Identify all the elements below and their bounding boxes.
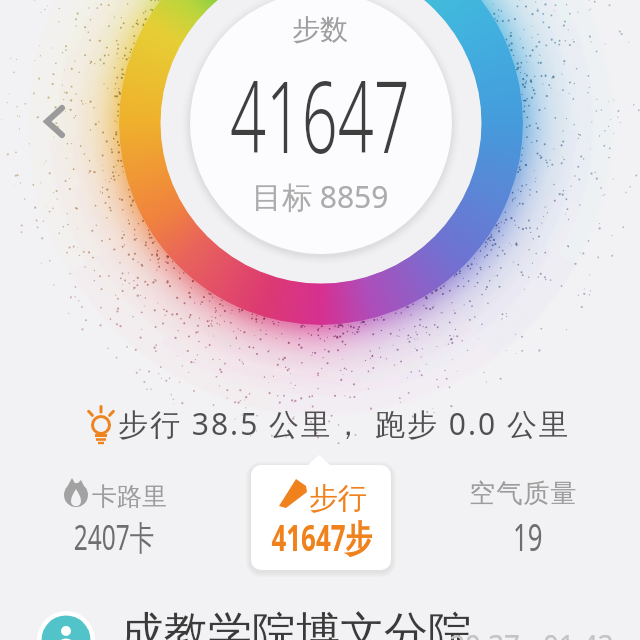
staticText: 19 — [513, 510, 543, 562]
staticText: 成教学院博文分院 — [120, 606, 472, 640]
staticText: 20:37 - 01:43 — [449, 625, 614, 640]
staticText: 目标 8859 — [252, 176, 389, 217]
staticText: 2407卡 — [74, 514, 154, 560]
staticText: 空气质量 — [469, 477, 577, 510]
button[interactable] — [34, 96, 78, 140]
staticText: 41647步 — [271, 513, 372, 562]
staticText: 41647 — [230, 46, 410, 182]
button[interactable] — [0, 600, 640, 640]
staticText: 卡路里 — [92, 481, 167, 512]
button[interactable] — [251, 455, 391, 570]
staticText: 步行 — [309, 480, 367, 517]
staticText: 步行 38.5 公里， 跑步 0.0 公里 — [118, 403, 571, 444]
staticText: 步数 — [292, 12, 348, 47]
